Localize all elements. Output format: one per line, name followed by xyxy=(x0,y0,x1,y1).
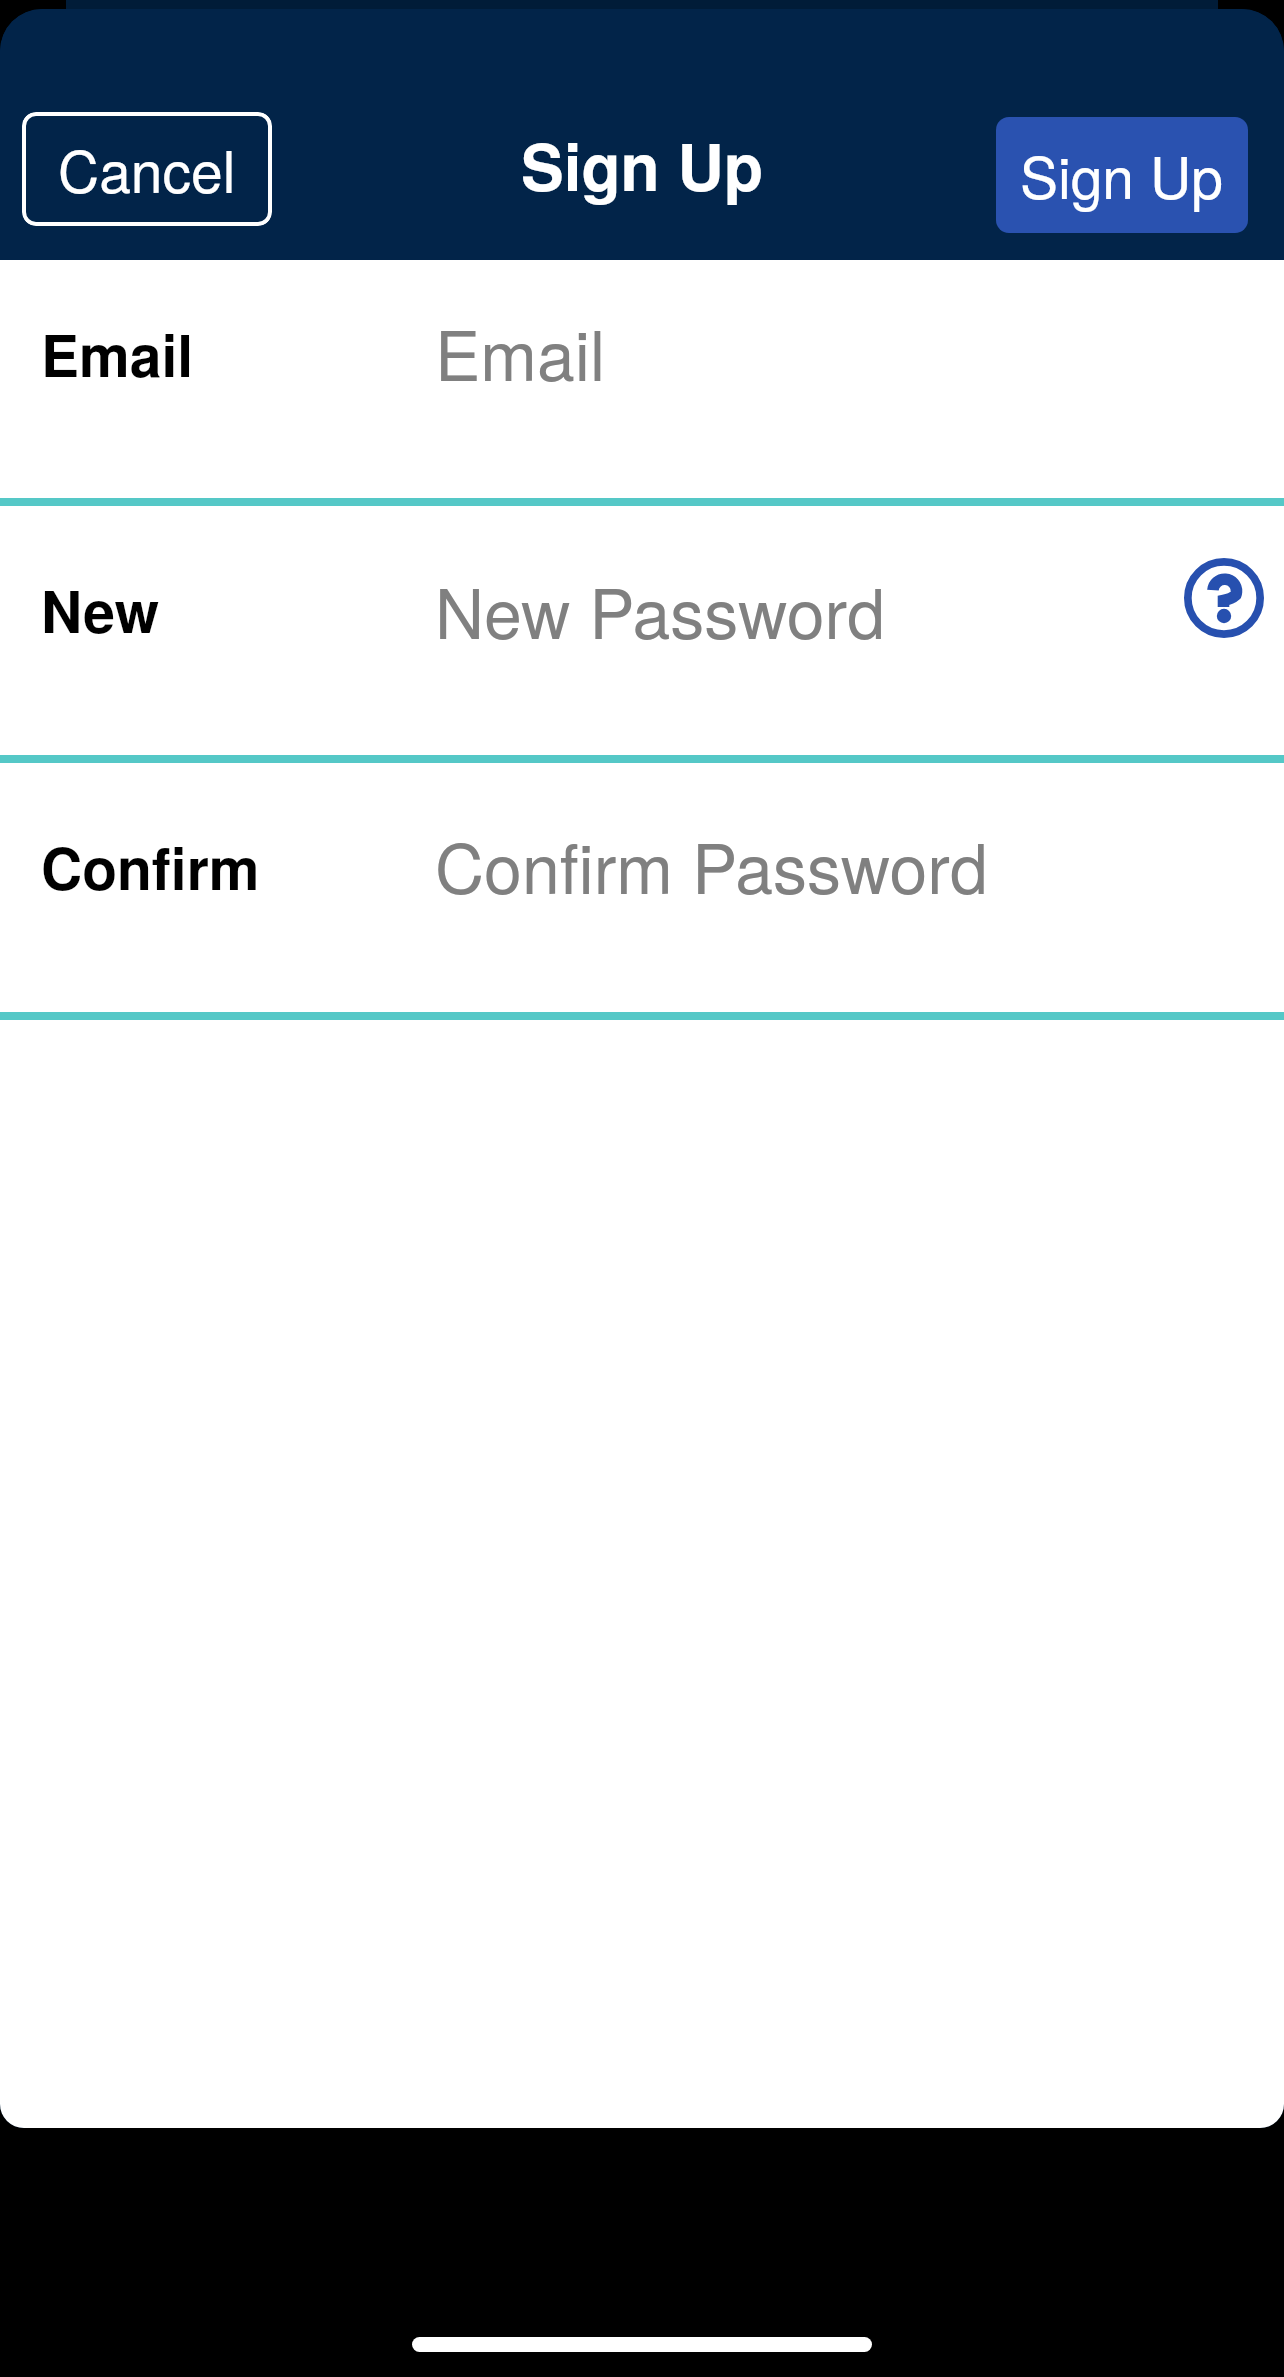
staticText: New Password xyxy=(435,561,886,658)
staticText: Confirm xyxy=(41,826,260,908)
button[interactable]: Cancel xyxy=(22,112,272,226)
staticText: Sign Up xyxy=(1020,134,1224,216)
button[interactable]: Password requirements help xyxy=(1184,558,1264,638)
staticText: Email xyxy=(435,303,606,400)
button[interactable]: New xyxy=(0,506,1284,755)
staticText: Cancel xyxy=(58,128,236,210)
staticText: Email xyxy=(41,313,194,395)
staticText: Sign Up xyxy=(521,119,764,211)
button[interactable]: Confirm xyxy=(0,763,1284,1012)
staticText: New xyxy=(41,569,160,651)
staticText: Confirm Password xyxy=(435,816,988,913)
button[interactable]: Email xyxy=(0,260,1284,498)
button[interactable]: Sign Up xyxy=(996,117,1248,233)
